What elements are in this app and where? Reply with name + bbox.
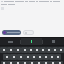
button[interactable]: Key [49, 54, 55, 60]
button[interactable]: Key [24, 54, 31, 60]
button[interactable]: Key [43, 54, 49, 60]
button[interactable]: Key [0, 47, 7, 53]
button[interactable]: Key [7, 47, 14, 53]
button[interactable]: Key [46, 47, 52, 53]
button[interactable]: Key [1, 61, 7, 64]
button[interactable]: Key [37, 54, 43, 60]
button[interactable]: Key [58, 47, 64, 53]
button[interactable]: Key [14, 61, 21, 64]
button[interactable]: Key [7, 61, 14, 64]
button[interactable] [23, 30, 34, 35]
button[interactable]: Key [3, 54, 10, 60]
button[interactable]: Key [21, 61, 28, 64]
button[interactable]: Key [52, 47, 58, 53]
button[interactable]: Key [28, 47, 34, 53]
button[interactable]: Key [21, 47, 28, 53]
button[interactable]: Key [31, 54, 37, 60]
button[interactable]: Key [28, 61, 35, 64]
button[interactable]: Suggestion one [0, 38, 20, 45]
button[interactable] [2, 30, 21, 35]
button[interactable]: Key [42, 61, 49, 64]
button[interactable]: Suggestion two [21, 38, 42, 45]
button[interactable]: Suggestion three [43, 38, 64, 45]
button[interactable]: Key [56, 61, 63, 64]
button[interactable]: Key [40, 47, 46, 53]
button[interactable]: Key [14, 47, 21, 53]
button[interactable]: Key [17, 54, 24, 60]
button[interactable]: Key [55, 54, 61, 60]
button[interactable]: Key [34, 47, 40, 53]
button[interactable]: Key [10, 54, 17, 60]
button[interactable]: Key [49, 61, 56, 64]
button[interactable]: Key [35, 61, 42, 64]
